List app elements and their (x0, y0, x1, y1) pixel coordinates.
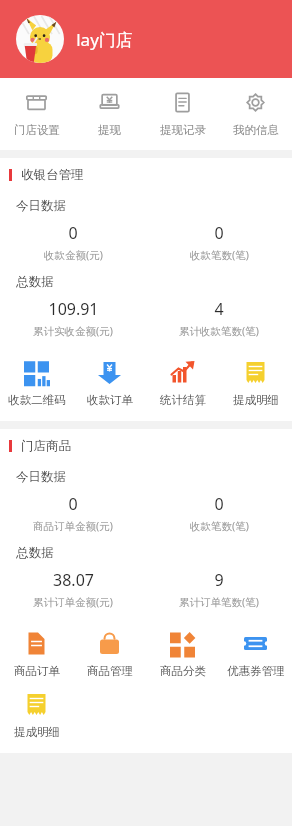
button[interactable]: 我的信息 (219, 78, 292, 150)
staticText: 收款笔数(笔) (190, 248, 249, 262)
button[interactable]: 优惠券管理 (219, 629, 292, 680)
button[interactable]: 0 (146, 222, 292, 262)
staticText: 总数据 (16, 545, 54, 561)
staticText: 9 (214, 569, 224, 591)
button[interactable]: 收款订单 (73, 358, 146, 409)
staticText: 累计收款笔数(笔) (179, 324, 259, 338)
button[interactable]: 统计结算 (146, 358, 219, 409)
staticText: 今日数据 (16, 469, 66, 485)
button[interactable]: lay门店 (16, 15, 292, 63)
button[interactable]: 提成明细 (0, 690, 73, 741)
staticText: 累计订单金额(元) (33, 595, 113, 609)
staticText: 收款笔数(笔) (190, 519, 249, 533)
button[interactable]: 9 (146, 569, 292, 609)
staticText: lay门店 (76, 28, 133, 51)
staticText: 商品管理 (87, 664, 133, 678)
staticText: 门店商品 (21, 438, 71, 454)
staticText: 0 (214, 493, 224, 515)
staticText: 提现 (98, 123, 121, 137)
staticText: 优惠券管理 (227, 664, 285, 678)
staticText: 109.91 (48, 298, 99, 320)
button[interactable]: 109.91 (0, 298, 146, 338)
button[interactable]: 商品分类 (146, 629, 219, 680)
button[interactable]: 0 (146, 493, 292, 533)
button[interactable]: 提成明细 (219, 358, 292, 409)
staticText: 商品订单金额(元) (33, 519, 113, 533)
button[interactable]: 收款二维码 (0, 358, 73, 409)
staticText: 38.07 (53, 569, 94, 591)
staticText: 提成明细 (233, 393, 279, 407)
staticText: 收款金额(元) (44, 248, 103, 262)
staticText: 累计实收金额(元) (33, 324, 113, 338)
staticText: 0 (68, 493, 78, 515)
staticText: 累计订单笔数(笔) (179, 595, 259, 609)
button[interactable]: 商品管理 (73, 629, 146, 680)
button[interactable]: 0 (0, 493, 146, 533)
button[interactable]: 38.07 (0, 569, 146, 609)
staticText: 我的信息 (233, 123, 279, 137)
staticText: 0 (214, 222, 224, 244)
button[interactable]: 商品订单 (0, 629, 73, 680)
staticText: 收款二维码 (8, 393, 66, 407)
staticText: 收银台管理 (21, 167, 84, 183)
button[interactable]: 提现 (73, 78, 146, 150)
staticText: 提现记录 (160, 123, 206, 137)
staticText: 商品订单 (14, 664, 60, 678)
staticText: 提成明细 (14, 725, 60, 739)
staticText: 统计结算 (160, 393, 206, 407)
staticText: 门店设置 (14, 123, 60, 137)
staticText: 收款订单 (87, 393, 133, 407)
staticText: 4 (214, 298, 224, 320)
button[interactable]: 0 (0, 222, 146, 262)
staticText: 总数据 (16, 274, 54, 290)
staticText: 商品分类 (160, 664, 206, 678)
button[interactable]: 门店设置 (0, 78, 73, 150)
button[interactable]: 4 (146, 298, 292, 338)
button[interactable]: 提现记录 (146, 78, 219, 150)
staticText: 0 (68, 222, 78, 244)
staticText: 今日数据 (16, 198, 66, 214)
